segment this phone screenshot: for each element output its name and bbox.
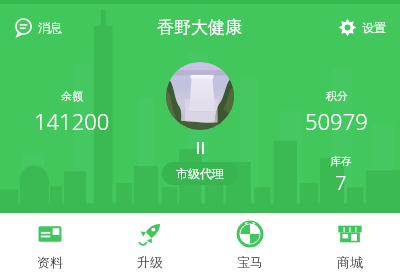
staticText: 141200 <box>34 106 110 136</box>
staticText: 资料 <box>37 254 63 270</box>
button[interactable]: 设置 <box>330 14 400 41</box>
staticText: 设置 <box>362 20 386 35</box>
staticText: 50979 <box>305 106 368 136</box>
staticText: 升级 <box>137 254 163 270</box>
staticText: 商城 <box>337 254 363 270</box>
staticText: 积分 <box>326 89 348 103</box>
staticText: 余额 <box>61 89 83 103</box>
staticText: 香野大健康 <box>157 17 242 38</box>
button[interactable]: 消息 <box>0 14 70 41</box>
button[interactable]: 市级代理 <box>162 162 238 185</box>
button[interactable]: 升级 <box>100 213 200 278</box>
button[interactable]: 库存 <box>326 150 356 200</box>
button[interactable]: 宝马 <box>200 213 300 278</box>
button[interactable]: 商城 <box>300 213 400 278</box>
button[interactable]: Profile photo <box>166 62 234 130</box>
button[interactable]: 积分 <box>301 85 372 140</box>
staticText: 宝马 <box>237 254 263 270</box>
button[interactable]: 资料 <box>0 213 100 278</box>
button[interactable]: 余额 <box>30 85 114 140</box>
staticText: 市级代理 <box>176 166 224 181</box>
staticText: 7 <box>335 169 347 196</box>
staticText: 库存 <box>330 154 352 168</box>
staticText: 消息 <box>38 20 62 35</box>
